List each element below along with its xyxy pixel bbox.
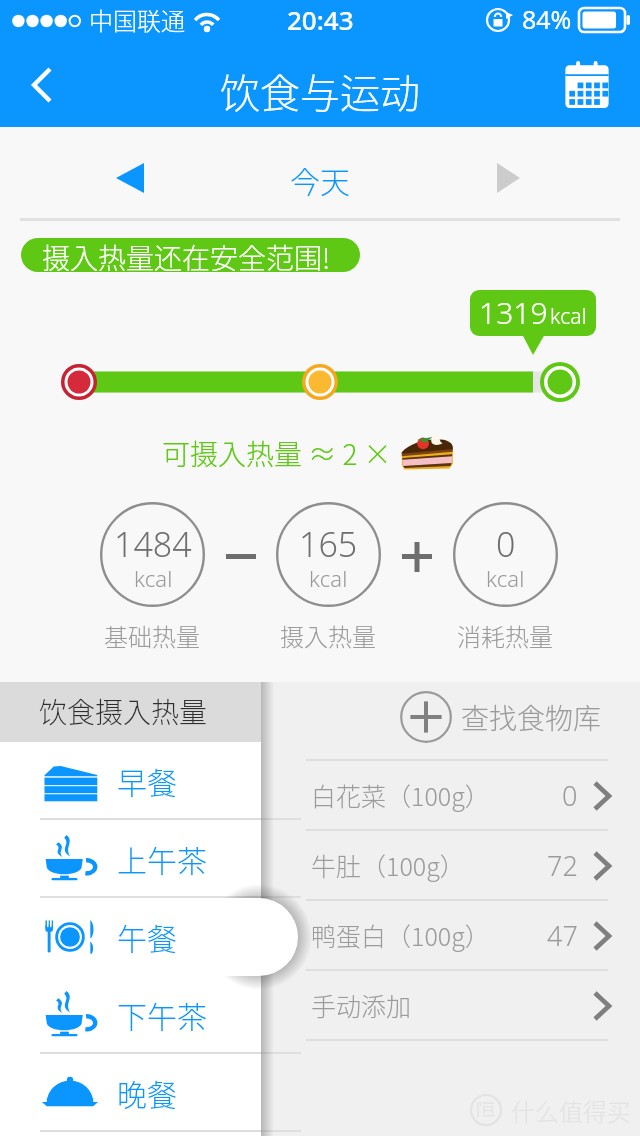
button[interactable]: 消耗热量 <box>453 502 558 607</box>
button[interactable]: 1319 <box>470 290 596 336</box>
staticText: 可摄入热量 ≈ 2 × <box>162 433 392 474</box>
button[interactable]: 摄入热量 <box>276 502 381 607</box>
staticText: 消耗热量 <box>457 618 553 653</box>
staticText: 饮食摄入热量 <box>39 691 208 732</box>
button[interactable]: 晚餐 <box>0 1054 261 1132</box>
staticText: 查找食物库 <box>461 697 602 738</box>
staticText: 基础热量 <box>104 618 200 653</box>
staticText: 白花菜（100g） <box>311 777 490 813</box>
button[interactable]: 午餐 <box>0 898 298 976</box>
button[interactable]: 查找食物库 <box>261 682 640 761</box>
staticText: 20:43 <box>287 2 354 37</box>
staticText: 上午茶 <box>117 837 207 880</box>
button[interactable]: 基础热量 <box>100 502 205 607</box>
staticText: 饮食与运动 <box>220 62 420 120</box>
staticText: kcal <box>309 563 348 593</box>
staticText: 摄入热量 <box>280 618 376 653</box>
staticText: 中国联通 <box>89 2 185 37</box>
button[interactable]: 手动添加 <box>261 971 640 1041</box>
staticText: 165 <box>299 521 358 567</box>
staticText: 0 <box>496 521 516 567</box>
button[interactable]: Previous day <box>96 146 164 210</box>
staticText: 晚餐 <box>117 1071 177 1114</box>
staticText: kcal <box>486 563 525 593</box>
staticText: 72 <box>547 847 578 884</box>
button[interactable]: Back <box>0 40 88 127</box>
staticText: 1319 <box>479 292 548 333</box>
button[interactable]: Next day <box>476 146 544 210</box>
staticText: 47 <box>547 917 578 954</box>
staticText: 午餐 <box>117 915 177 958</box>
staticText: 早餐 <box>117 759 177 802</box>
button[interactable]: 白花菜（100g） <box>261 761 640 831</box>
staticText: 鸭蛋白（100g） <box>311 917 490 953</box>
staticText: 下午茶 <box>117 993 207 1036</box>
staticText: 摄入热量还在安全范围! <box>42 238 331 271</box>
button[interactable]: 早餐 <box>0 742 261 820</box>
staticText: kcal <box>550 302 587 331</box>
staticText: 1484 <box>114 521 192 567</box>
staticText: 84% <box>522 2 572 36</box>
button[interactable]: 下午茶 <box>0 976 261 1054</box>
staticText: 什么值得买 <box>511 1093 631 1128</box>
button[interactable]: Calendar <box>564 60 610 108</box>
button[interactable]: 鸭蛋白（100g） <box>261 901 640 971</box>
staticText: 手动添加 <box>311 987 412 1023</box>
button[interactable]: 牛肚（100g） <box>261 831 640 901</box>
staticText: 今天 <box>290 158 350 201</box>
staticText: 牛肚（100g） <box>311 847 465 883</box>
button[interactable]: 摄入热量还在安全范围! <box>21 238 360 272</box>
button[interactable]: 上午茶 <box>0 820 261 898</box>
staticText: 0 <box>562 777 578 814</box>
staticText: kcal <box>134 563 173 593</box>
